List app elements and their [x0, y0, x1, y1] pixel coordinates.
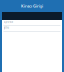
- staticText: E-posta: [3, 20, 12, 23]
- staticText: Şifre: [3, 26, 9, 29]
- staticText: Kiracı Girişi: [21, 3, 43, 9]
